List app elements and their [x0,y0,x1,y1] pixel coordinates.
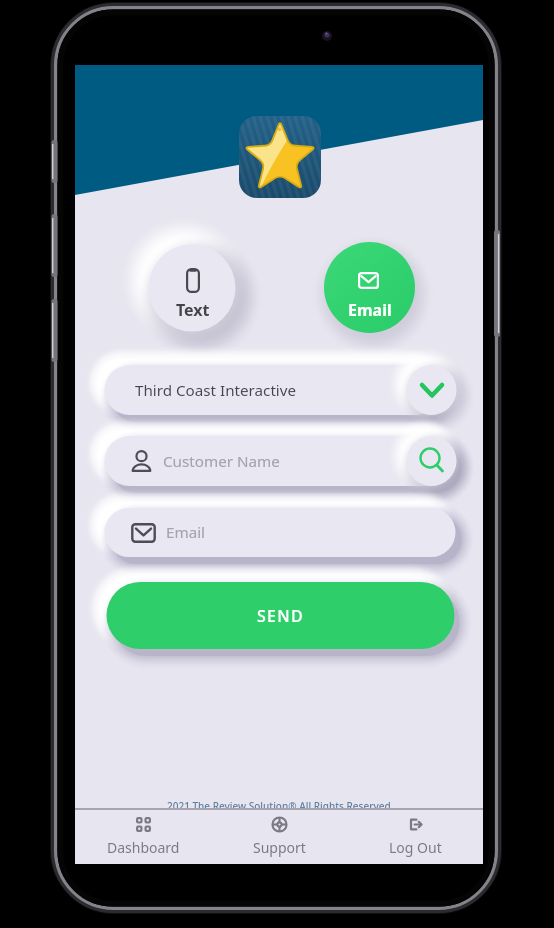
staticText: 2021 The Review Solution® All Rights Res… [167,799,391,813]
button[interactable]: SEND [107,582,455,649]
button[interactable]: Text [149,245,236,332]
staticText: Customer Name [163,451,280,472]
button[interactable]: Customer Name [105,436,456,486]
button[interactable]: Dashboard [75,810,211,864]
staticText: Email [348,299,392,321]
staticText: Third Coast Interactive [135,380,297,401]
staticText: Support [253,838,306,857]
button[interactable]: Support [211,810,347,864]
staticText: SEND [257,605,305,627]
staticText: Email [166,522,206,543]
button[interactable]: Open dropdown [407,365,457,415]
button[interactable]: Third Coast Interactive [105,365,441,415]
button[interactable]: Log Out [347,810,483,864]
staticText: Log Out [389,838,442,857]
button[interactable]: Email [105,508,456,557]
staticText: Dashboard [107,838,180,857]
button[interactable]: Search [407,436,457,486]
button[interactable]: Email [324,242,415,333]
staticText: Text [176,299,210,321]
